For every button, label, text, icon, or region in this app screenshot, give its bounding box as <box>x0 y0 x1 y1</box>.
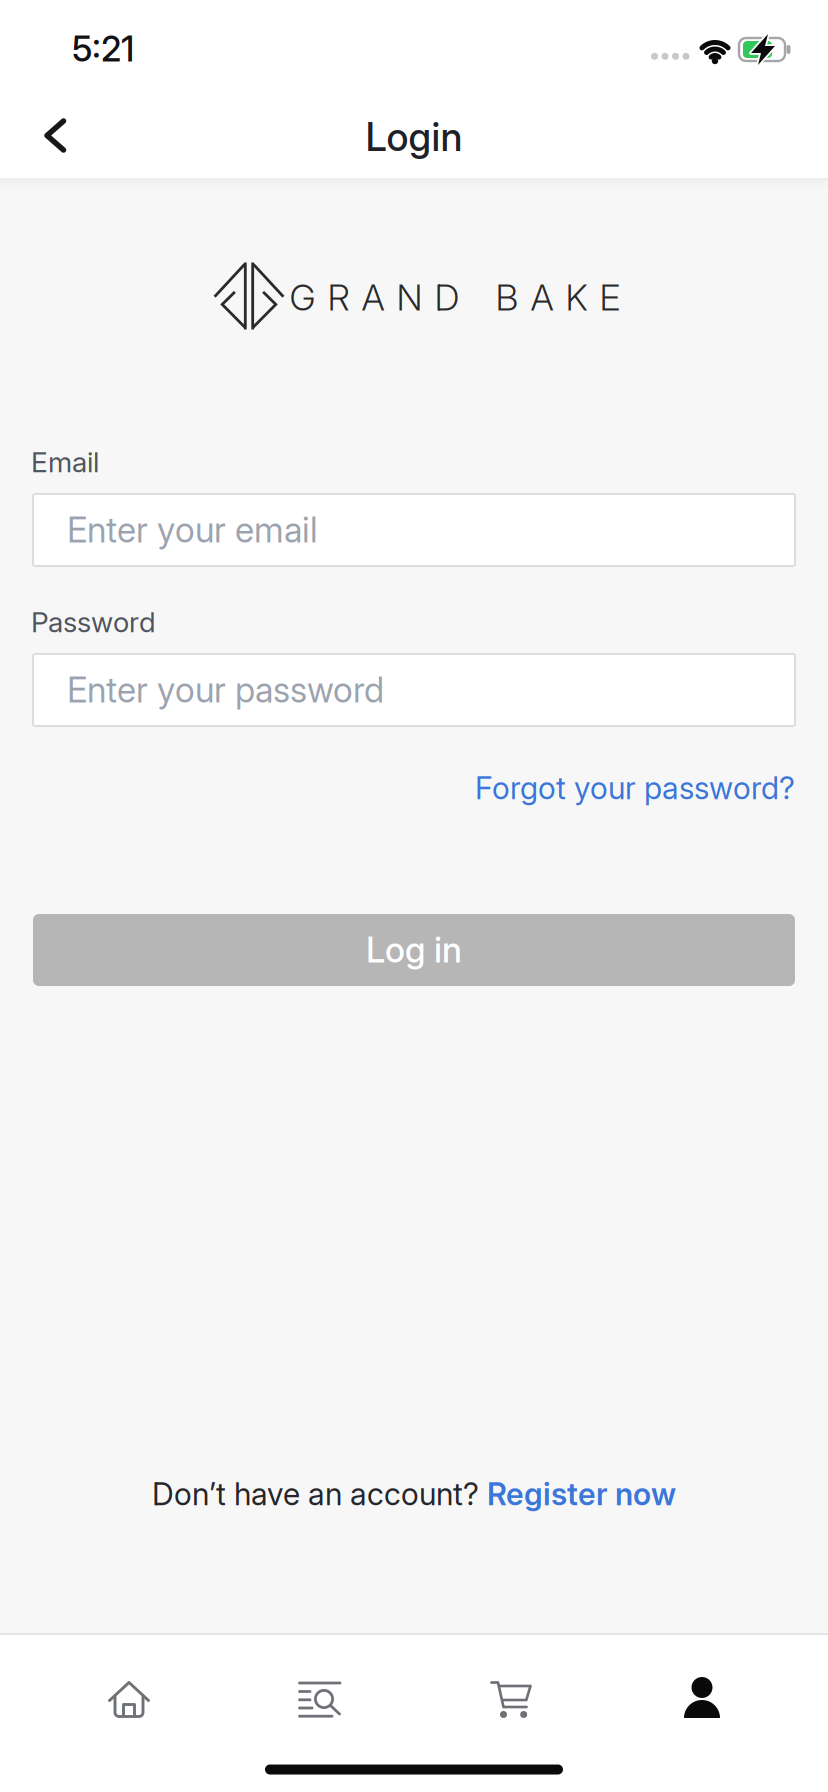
staticText: 5:21 <box>72 29 134 69</box>
staticText: Login <box>365 114 462 160</box>
staticText: Forgot your password? <box>475 770 795 806</box>
staticText: Register now <box>487 1476 676 1512</box>
staticText: Enter your email <box>67 510 318 550</box>
staticText: Log in <box>366 930 462 970</box>
staticText: Password <box>31 605 156 638</box>
staticText: Don’t have an account? <box>152 1476 479 1512</box>
staticText: G R A N D B A K E <box>289 276 620 319</box>
staticText: Email <box>31 445 99 478</box>
staticText: Enter your password <box>67 670 384 710</box>
